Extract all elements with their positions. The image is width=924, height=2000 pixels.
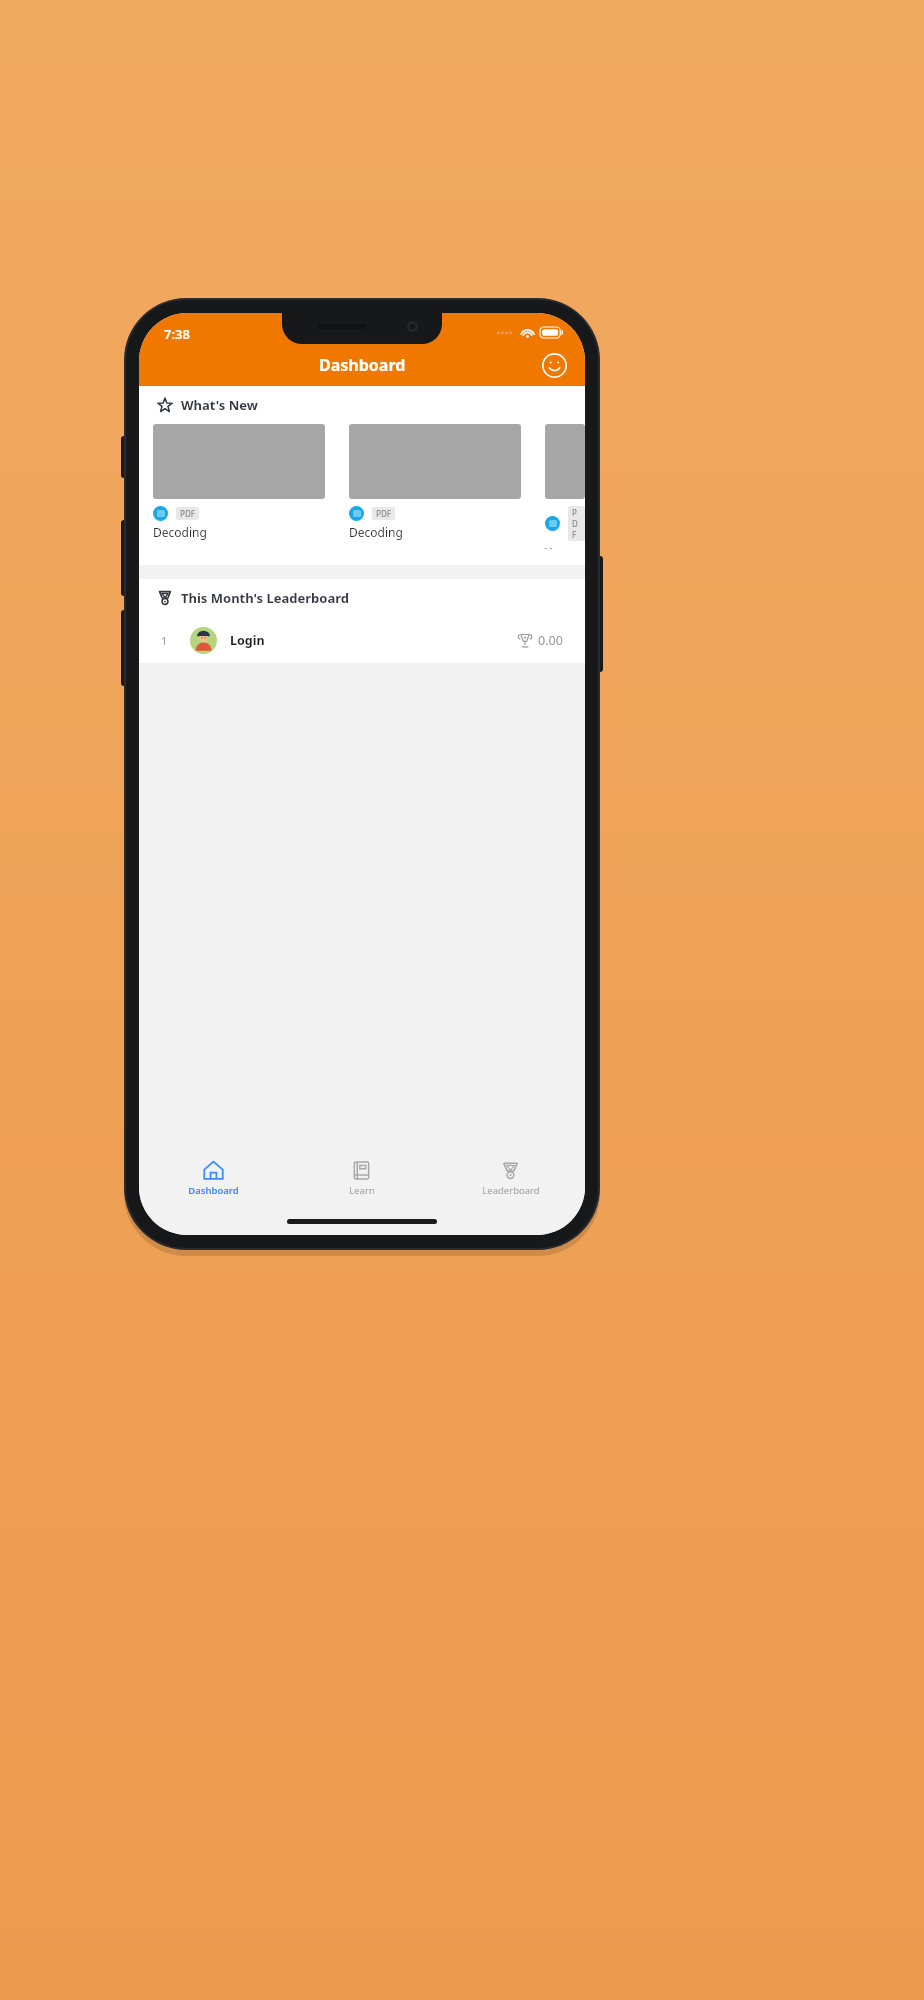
staticText: This Month's Leaderboard [181, 589, 350, 607]
staticText: Decoding [153, 524, 207, 540]
staticText: PDF [572, 507, 581, 540]
button[interactable]: Learn [287, 1151, 436, 1213]
staticText: 7:38 [164, 325, 190, 343]
staticText: Decoding [349, 524, 403, 540]
button[interactable]: Profile [537, 348, 571, 382]
button[interactable]: PDF [545, 424, 585, 549]
staticText: 0.00 [538, 632, 563, 649]
button[interactable]: Leaderboard [436, 1151, 585, 1213]
staticText: PDF [376, 508, 391, 519]
staticText: PDF [180, 508, 195, 519]
button[interactable]: PDF [349, 424, 521, 540]
button[interactable]: Dashboard [139, 1151, 287, 1213]
staticText: Leaderboard [482, 1184, 540, 1197]
staticText: Dashboard [319, 354, 406, 376]
staticText: What's New [181, 396, 258, 414]
button[interactable]: PDF [153, 424, 325, 540]
staticText: Learn [349, 1184, 375, 1197]
staticText: Login [230, 632, 265, 649]
staticText: Dashboard [188, 1184, 239, 1197]
button[interactable]: 1 [139, 617, 585, 663]
staticText: Yoga [545, 544, 573, 549]
staticText: 1 [161, 633, 168, 648]
